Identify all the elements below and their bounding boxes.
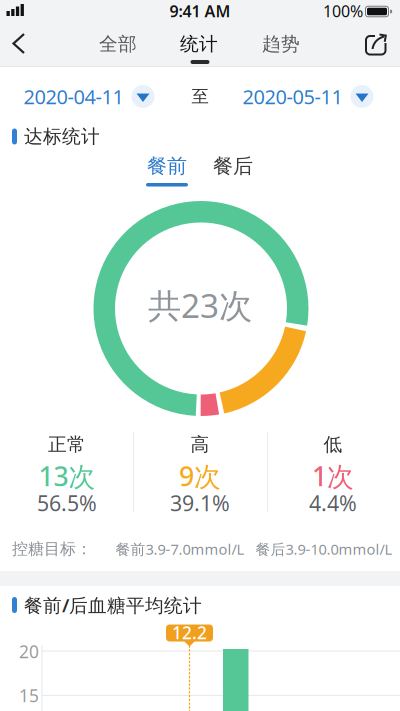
staticText: 9次	[179, 458, 221, 494]
staticText: 4.4%	[309, 489, 357, 517]
staticText: 39.1%	[170, 489, 230, 517]
button[interactable]: 餐前	[147, 154, 187, 178]
staticText: 15	[19, 684, 39, 707]
staticText: 2020-04-11	[23, 83, 123, 110]
button[interactable]: Share	[352, 23, 396, 67]
staticText: 达标统计	[24, 125, 100, 148]
button[interactable]: 统计	[180, 32, 218, 55]
staticText: 统计	[180, 32, 218, 55]
staticText: 全部	[99, 32, 137, 55]
staticText: 正常	[48, 433, 86, 456]
staticText: 高	[190, 433, 209, 456]
staticText: 餐前/后血糖平均统计	[24, 593, 202, 617]
button[interactable]: 全部	[99, 32, 137, 55]
staticText: 低	[323, 433, 342, 456]
staticText: 100%	[323, 0, 363, 22]
staticText: 12.2	[172, 621, 207, 644]
staticText: 至	[191, 86, 208, 107]
staticText: 餐后3.9-10.0mmol/L	[255, 539, 392, 559]
staticText: 餐前	[147, 154, 187, 178]
staticText: 共23次	[148, 283, 252, 327]
staticText: 控糖目标：	[12, 539, 92, 559]
button[interactable]: 趋势	[262, 32, 300, 55]
staticText: 趋势	[262, 32, 300, 55]
staticText: 56.5%	[37, 489, 97, 517]
staticText: 2020-05-11	[242, 83, 342, 110]
staticText: 9:41 AM	[169, 0, 230, 22]
staticText: 1次	[312, 458, 354, 494]
staticText: 13次	[38, 458, 95, 494]
button[interactable]: 餐后	[213, 154, 253, 178]
button[interactable]: 2020-05-11	[242, 83, 373, 110]
staticText: 20	[19, 640, 39, 663]
button[interactable]: Back	[0, 21, 40, 65]
button[interactable]: 2020-04-11	[23, 83, 154, 110]
staticText: 餐前3.9-7.0mmol/L	[115, 539, 244, 559]
staticText: 餐后	[213, 154, 253, 178]
